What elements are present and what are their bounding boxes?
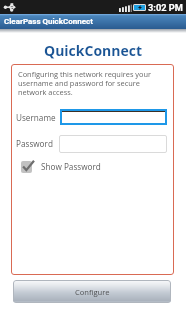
staticText: Configuring this network requires your u… (18, 69, 158, 97)
staticText: Password (16, 138, 53, 149)
staticText: 3:02 PM (148, 2, 183, 13)
button[interactable]: Username field (60, 109, 167, 125)
staticText: Username (16, 112, 56, 123)
button[interactable]: Password field (59, 135, 167, 153)
button[interactable]: Show Password (21, 160, 101, 172)
staticText: Show Password (41, 161, 101, 172)
staticText: ClearPass QuickConnect (4, 17, 93, 26)
other: USB connected (4, 2, 16, 12)
staticText: Configure (75, 287, 110, 297)
button[interactable]: Configure (13, 280, 171, 303)
staticText: QuickConnect (0, 41, 186, 60)
